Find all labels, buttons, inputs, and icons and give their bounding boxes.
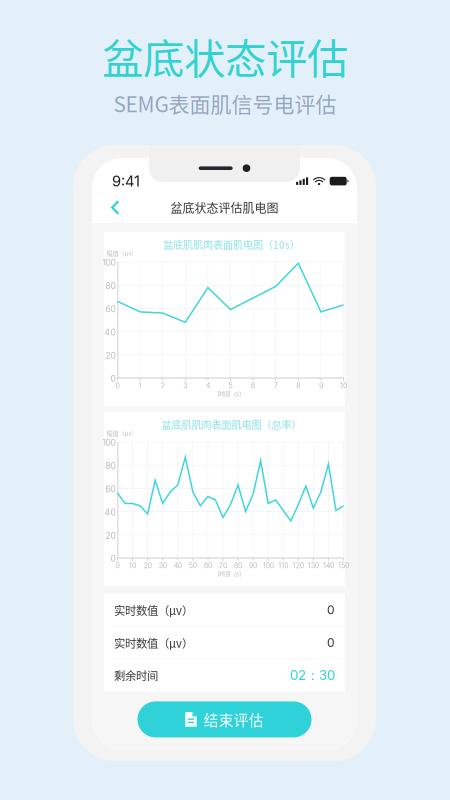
staticText: 幅值（μv） (106, 248, 137, 257)
staticText: 20 (105, 350, 115, 361)
staticText: 130 (308, 561, 319, 570)
staticText: 3 (183, 381, 187, 390)
staticText: 幅值（μv） (106, 428, 137, 437)
staticText: 20 (105, 530, 115, 541)
staticText: 140 (323, 561, 334, 570)
staticText: 盆底状态评估肌电图 (170, 199, 278, 216)
staticText: 100 (102, 258, 115, 268)
staticText: 8 (296, 381, 300, 390)
staticText: 120 (293, 561, 304, 570)
staticText: 100 (263, 561, 274, 570)
staticText: 110 (278, 561, 288, 570)
staticText: 80 (234, 561, 242, 570)
button[interactable]: 剩余时间 (104, 659, 345, 691)
button[interactable]: 实时数值（μv） (104, 627, 345, 659)
staticText: 100 (102, 438, 115, 448)
staticText: 60 (204, 561, 212, 570)
staticText: 0 (110, 554, 115, 564)
staticText: 80 (105, 461, 115, 471)
staticText: 5 (228, 381, 232, 390)
staticText: 50 (189, 561, 197, 570)
staticText: 实时数值（μv） (114, 602, 193, 618)
button[interactable]: Back (92, 192, 145, 223)
staticText: 1 (139, 381, 142, 390)
staticText: 盆底状态评估 (102, 26, 348, 86)
staticText: 0 (115, 381, 119, 390)
staticText: 60 (105, 484, 115, 494)
staticText: 实时数值（μv） (114, 634, 193, 651)
button[interactable]: 结束评估 (137, 701, 311, 737)
staticText: 剩余时间 (114, 667, 158, 684)
staticText: 90 (249, 561, 257, 570)
staticText: 0 (327, 603, 335, 617)
staticText: 80 (105, 281, 115, 291)
staticText: 盆底肌肌肉表面肌电图（总率） (161, 417, 301, 432)
staticText: 盆底肌肌肉表面肌电图（10s） (163, 237, 300, 252)
button[interactable]: 实时数值（μv） (104, 594, 345, 626)
staticText: 40 (104, 507, 115, 517)
staticText: 10 (129, 561, 136, 570)
staticText: 0 (115, 561, 119, 570)
staticText: 70 (219, 561, 227, 570)
staticText: 20 (144, 561, 152, 570)
staticText: 150 (338, 561, 349, 570)
staticText: 02：30 (290, 667, 335, 684)
staticText: 2 (161, 381, 165, 390)
staticText: 30 (159, 561, 167, 570)
staticText: 60 (105, 304, 115, 314)
staticText: 0 (110, 374, 115, 384)
staticText: 10 (340, 381, 347, 390)
staticText: 40 (174, 561, 182, 570)
staticText: 时间（s） (218, 389, 245, 398)
staticText: 40 (104, 327, 115, 337)
staticText: 7 (274, 381, 278, 390)
staticText: 时间（s） (218, 569, 245, 578)
staticText: 6 (251, 381, 255, 390)
staticText: SEMG表面肌信号电评估 (113, 88, 336, 118)
staticText: 0 (327, 635, 335, 650)
staticText: 9:41 (112, 172, 140, 190)
staticText: 结束评估 (204, 709, 264, 730)
staticText: 9 (319, 381, 323, 390)
staticText: 4 (206, 381, 210, 390)
